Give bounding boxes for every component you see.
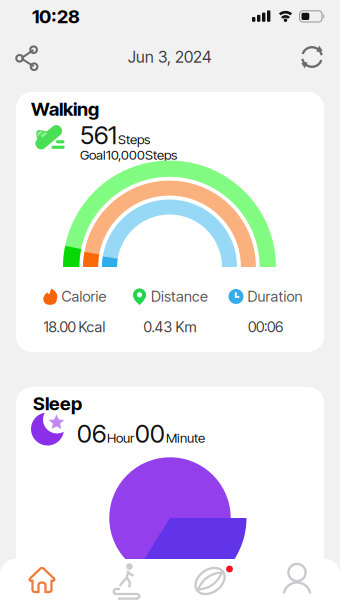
button[interactable]: Share [6,35,50,79]
staticText: Hour [107,430,134,446]
staticText: Duration [247,288,302,305]
button[interactable]: Sleep [170,559,255,604]
staticText: Jun 3, 2024 [128,48,212,66]
staticText: 561 [80,120,117,150]
staticText: 10:28 [32,5,80,27]
button[interactable]: Activity [85,559,170,604]
staticText: Steps [118,131,150,147]
staticText: Walking [31,98,99,120]
staticText: 00:06 [248,318,283,336]
staticText: Distance [151,288,208,305]
button[interactable]: Refresh [290,35,334,79]
button[interactable]: Profile [255,559,340,604]
staticText: 06 [77,418,106,448]
staticText: 0.43 Km [143,318,196,336]
staticText: 18.00 Kcal [43,318,105,336]
button[interactable]: Home [0,559,85,604]
staticText: Sleep [33,392,82,414]
staticText: Calorie [61,288,106,305]
staticText: 00 [135,418,165,448]
staticText: Minute [166,430,205,446]
staticText: Goal10,000Steps [80,147,177,163]
